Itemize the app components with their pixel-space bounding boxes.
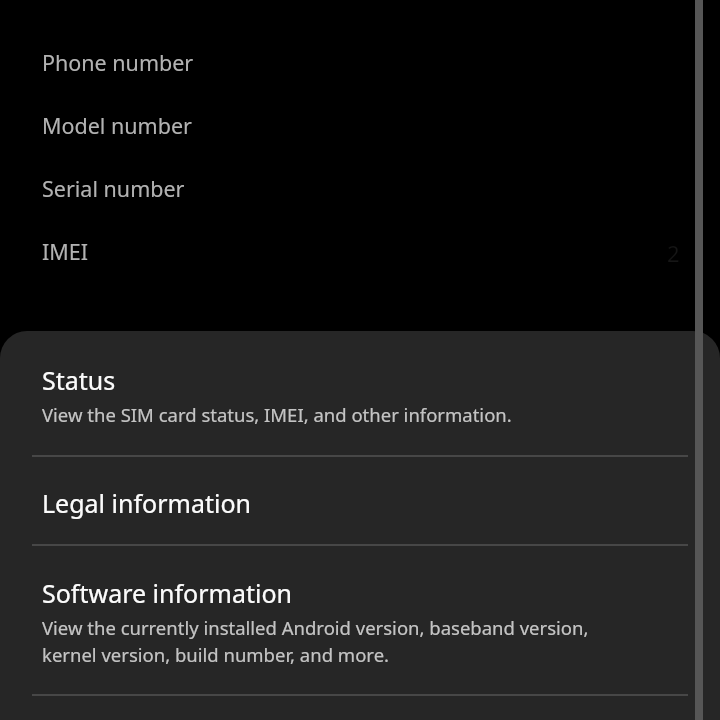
button[interactable]: Status: [0, 331, 720, 455]
staticText: 2: [667, 238, 680, 268]
button[interactable]: Model number: [0, 94, 720, 157]
staticText: Serial number: [42, 174, 185, 203]
button[interactable]: Software information: [0, 546, 720, 694]
button[interactable]: IMEI: [0, 220, 720, 283]
staticText: Software information: [42, 576, 292, 610]
staticText: Phone number: [42, 48, 194, 77]
button[interactable]: Legal information: [0, 457, 720, 544]
staticText: Status: [42, 363, 116, 397]
staticText: View the currently installed Android ver…: [42, 615, 610, 668]
staticText: Model number: [42, 111, 192, 140]
button[interactable]: Phone number: [0, 31, 720, 94]
staticText: View the SIM card status, IMEI, and othe…: [42, 402, 512, 427]
staticText: IMEI: [42, 237, 89, 266]
staticText: Legal information: [42, 486, 251, 520]
button[interactable]: Serial number: [0, 157, 720, 220]
